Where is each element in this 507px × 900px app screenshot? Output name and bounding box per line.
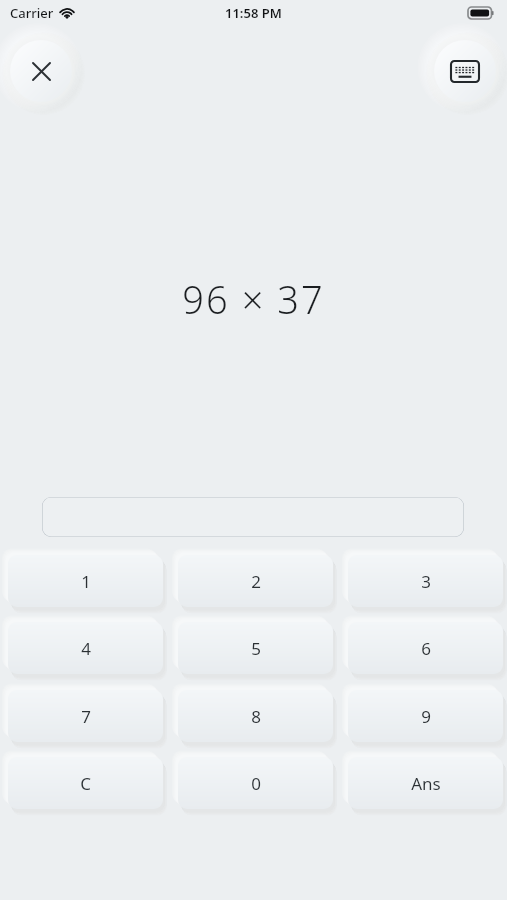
button[interactable]: C [8,757,163,809]
staticText: Ans [411,772,441,795]
button[interactable]: 1 [8,555,163,607]
button[interactable]: 6 [348,622,503,674]
staticText: C [80,772,91,795]
button[interactable]: Answer input [42,497,464,537]
button[interactable]: Keyboard [434,40,496,102]
button[interactable]: 5 [178,622,333,674]
staticText: Carrier [10,4,54,22]
staticText: 1 [81,570,91,593]
staticText: 5 [251,637,261,660]
staticText: 3 [421,570,431,593]
staticText: 11:58 PM [225,4,282,22]
staticText: 8 [251,705,261,728]
button[interactable]: 9 [348,690,503,742]
staticText: 9 [421,705,431,728]
button[interactable]: 2 [178,555,333,607]
button[interactable]: 7 [8,690,163,742]
staticText: 96 × 37 [182,273,325,325]
staticText: 6 [421,637,431,660]
button[interactable]: Close [10,40,72,102]
button[interactable]: 3 [348,555,503,607]
staticText: 2 [251,570,261,593]
staticText: 0 [251,772,261,795]
staticText: 4 [81,637,91,660]
button[interactable]: Ans [348,757,503,809]
button[interactable]: 8 [178,690,333,742]
button[interactable]: 0 [178,757,333,809]
staticText: 7 [81,705,91,728]
button[interactable]: 4 [8,622,163,674]
